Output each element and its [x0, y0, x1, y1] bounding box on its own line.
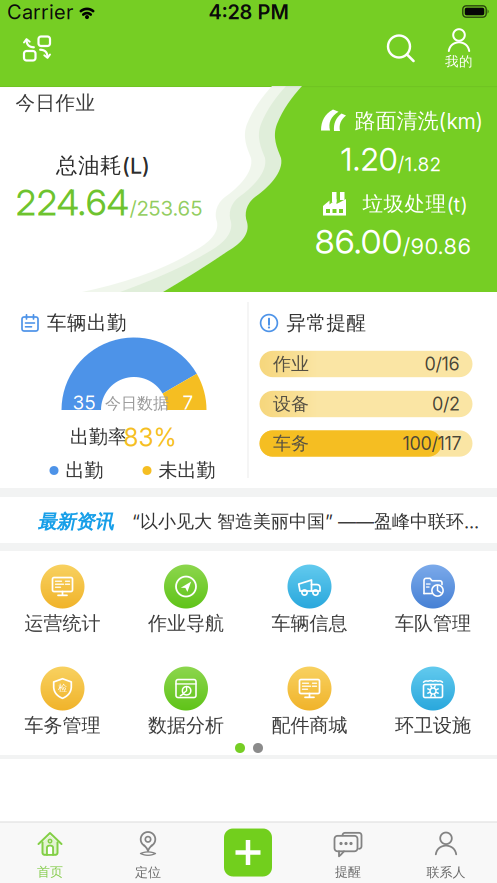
button[interactable]: 扫一扫: [22, 33, 52, 63]
staticText: 83%: [123, 423, 176, 452]
staticText: “以小见大 智造美丽中国” ——盈峰中联环境集团: [132, 510, 488, 533]
staticText: 异常提醒: [286, 311, 366, 335]
button[interactable]: 检: [24, 666, 100, 737]
staticText: 配件商城: [271, 713, 347, 737]
staticText: /1.82: [397, 153, 441, 176]
staticText: 35: [72, 391, 95, 414]
button[interactable]: 配件商城: [271, 666, 347, 737]
staticText: 车务管理: [24, 713, 100, 737]
button[interactable]: 定位: [135, 830, 161, 881]
staticText: 4:28 PM: [208, 0, 288, 24]
staticText: 垃圾处理(t): [362, 191, 467, 217]
button[interactable]: 联系人: [426, 831, 465, 881]
button[interactable]: 搜索: [386, 34, 415, 63]
button[interactable]: 车辆信息: [271, 564, 347, 635]
button[interactable]: 最新资讯: [5, 497, 492, 543]
staticText: 提醒: [335, 864, 361, 880]
button[interactable]: 异常提醒: [259, 311, 366, 335]
staticText: /90.86: [402, 233, 471, 260]
staticText: 最新资讯: [37, 510, 113, 534]
staticText: 86.00: [314, 221, 402, 262]
button[interactable]: 我的: [445, 28, 473, 70]
staticText: 数据分析: [148, 713, 224, 737]
staticText: 今日数据: [105, 393, 169, 414]
staticText: 车辆出勤: [47, 311, 127, 335]
staticText: 环卫设施: [395, 713, 471, 737]
button[interactable]: 车队管理: [395, 564, 471, 635]
staticText: 未出勤: [158, 458, 215, 482]
button[interactable]: 运营统计: [24, 564, 100, 635]
staticText: 0/16: [424, 353, 459, 375]
button[interactable]: 环卫设施: [395, 666, 471, 737]
button[interactable]: 提醒: [333, 831, 362, 880]
staticText: 我的: [445, 53, 473, 70]
button[interactable]: 数据分析: [148, 666, 224, 737]
staticText: 7: [182, 391, 193, 414]
staticText: /253.65: [129, 196, 202, 221]
staticText: 总油耗(L): [56, 152, 150, 179]
staticText: 定位: [135, 864, 161, 881]
staticText: 出勤: [65, 458, 103, 482]
staticText: 检: [58, 682, 67, 694]
button[interactable]: 首页: [36, 831, 63, 880]
staticText: 今日作业: [15, 91, 95, 115]
staticText: 作业导航: [148, 611, 224, 635]
button[interactable]: 作业导航: [148, 564, 224, 635]
staticText: 设备: [273, 393, 309, 415]
staticText: 车队管理: [395, 611, 471, 635]
button[interactable]: 新增: [224, 828, 272, 876]
staticText: 车辆信息: [271, 611, 347, 635]
staticText: 出勤率: [70, 425, 127, 449]
button[interactable]: 车辆出勤: [21, 311, 127, 335]
staticText: 联系人: [426, 864, 465, 881]
staticText: 1.20: [340, 141, 397, 178]
staticText: 车务: [273, 432, 309, 455]
staticText: 100/117: [402, 433, 461, 454]
staticText: Carrier: [7, 0, 73, 24]
staticText: 224.64: [15, 181, 129, 224]
staticText: 运营统计: [24, 611, 100, 635]
staticText: 首页: [37, 864, 63, 880]
staticText: 作业: [273, 353, 309, 375]
staticText: 路面清洗(km): [354, 108, 483, 134]
staticText: 0/2: [432, 393, 460, 415]
